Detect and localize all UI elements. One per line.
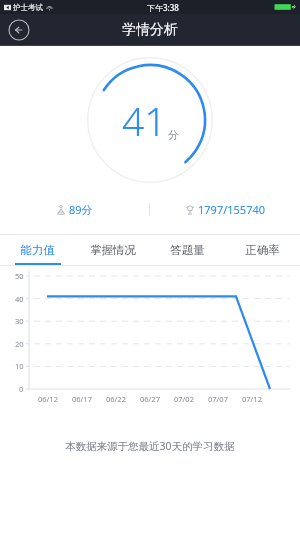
button[interactable]: 89分 <box>52 198 97 221</box>
staticText: 正确率 <box>245 243 280 257</box>
staticText: 掌握情况 <box>90 243 136 257</box>
button[interactable]: 1797/155740 <box>181 198 270 221</box>
button[interactable]: 答题量 <box>150 235 225 265</box>
staticText: 下午3:38 <box>147 2 179 13</box>
staticText: 06/17 <box>72 394 92 404</box>
staticText: 07/02 <box>174 394 194 404</box>
staticText: 30 <box>15 316 24 326</box>
staticText: 学情分析 <box>122 21 178 39</box>
staticText: 89分 <box>69 202 93 217</box>
staticText: 答题量 <box>170 243 205 257</box>
staticText: 护士考试 <box>13 3 43 12</box>
staticText: 能力值 <box>20 243 55 257</box>
button[interactable]: Back <box>8 19 30 41</box>
staticText: 06/27 <box>140 394 160 404</box>
staticText: 分 <box>168 128 179 142</box>
staticText: 41 <box>122 94 167 147</box>
button[interactable]: 能力值 <box>0 235 75 265</box>
staticText: 1797/155740 <box>198 202 266 217</box>
staticText: 50 <box>15 271 24 281</box>
staticText: 本数据来源于您最近30天的学习数据 <box>65 439 235 453</box>
staticText: 40 <box>15 294 24 304</box>
staticText: 20 <box>15 339 24 349</box>
button[interactable]: 正确率 <box>225 235 300 265</box>
staticText: 07/12 <box>242 394 262 404</box>
staticText: 0 <box>19 384 24 394</box>
staticText: 06/12 <box>38 394 58 404</box>
staticText: 06/22 <box>106 394 126 404</box>
staticText: 10 <box>15 361 24 371</box>
staticText: 07/07 <box>208 394 228 404</box>
button[interactable]: 掌握情况 <box>75 235 150 265</box>
